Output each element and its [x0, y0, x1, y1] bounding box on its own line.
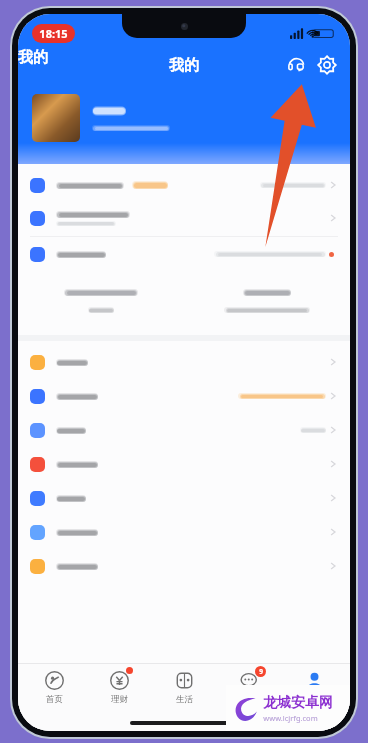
staticText: 我的 [18, 48, 48, 67]
staticText: 首页 [46, 694, 63, 705]
button[interactable]: Settings [314, 52, 340, 78]
staticText: 生活 [176, 694, 193, 705]
button[interactable] [18, 200, 350, 236]
staticText: 我的 [169, 56, 199, 75]
button[interactable] [18, 447, 350, 481]
button[interactable]: Customer service [284, 53, 308, 77]
button[interactable] [18, 413, 350, 447]
button[interactable] [18, 549, 350, 583]
button[interactable] [18, 237, 350, 271]
staticText: 9 [259, 667, 263, 676]
button[interactable]: 首页 [25, 667, 83, 705]
button[interactable]: 理财 [90, 667, 148, 705]
button[interactable] [18, 170, 350, 200]
button[interactable] [18, 289, 184, 313]
staticText: 我的 [306, 694, 323, 705]
staticText: 18:15 [39, 26, 68, 41]
staticText: 消息 [241, 694, 258, 705]
button[interactable]: 9 [220, 667, 278, 705]
button[interactable] [18, 481, 350, 515]
button[interactable]: 生活 [155, 667, 213, 705]
button[interactable] [184, 289, 350, 313]
button[interactable] [18, 94, 350, 142]
staticText: 龙城安卓网 [263, 694, 333, 712]
button[interactable]: 我的 [285, 667, 343, 705]
staticText: www.lcjrfg.com [263, 713, 318, 723]
button[interactable] [18, 515, 350, 549]
button[interactable] [18, 379, 350, 413]
button[interactable] [18, 345, 350, 379]
staticText: 理财 [111, 694, 128, 705]
